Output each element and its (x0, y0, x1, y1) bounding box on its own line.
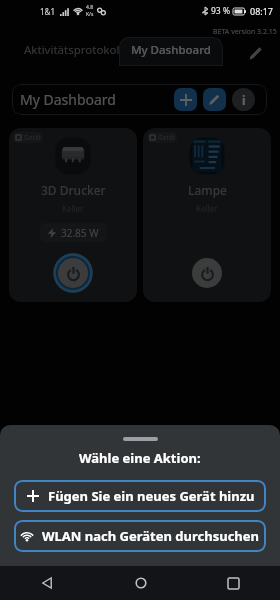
button[interactable]: Aktivitätsprotokoll (21, 35, 125, 64)
button[interactable]: Home (94, 566, 187, 600)
button[interactable]: Add (174, 88, 197, 111)
staticText: Wähle eine Aktion: (79, 449, 201, 467)
button[interactable]: Info (232, 88, 255, 111)
button[interactable]: Power toggle (53, 253, 93, 293)
button[interactable]: WLAN nach Geräten durchsuchen (14, 520, 266, 552)
staticText: Aktivitätsprotokoll (24, 42, 123, 58)
staticText: Lampe (188, 182, 227, 198)
staticText: Keller (196, 203, 218, 214)
button[interactable]: Recents (187, 566, 280, 600)
staticText: Gerät (24, 133, 41, 142)
staticText: i (242, 92, 246, 108)
staticText: WLAN nach Geräten durchsuchen (42, 527, 260, 545)
staticText: 3D Drucker (41, 182, 106, 198)
button[interactable]: Back (0, 566, 94, 600)
staticText: My Dashboard (131, 42, 211, 58)
staticText: 32.85 W (61, 226, 99, 240)
staticText: My Dashboard (20, 90, 116, 109)
button[interactable]: My Dashboard (119, 37, 223, 66)
staticText: 1&1 (40, 6, 56, 17)
staticText: 93 % (211, 5, 230, 17)
button[interactable]: Fügen Sie ein neues Gerät hinzu (14, 480, 266, 512)
staticText: K/s (86, 11, 94, 18)
button[interactable]: Power toggle (187, 253, 227, 293)
button[interactable]: Gerät (9, 128, 137, 302)
button[interactable]: Gerät (143, 128, 271, 302)
staticText: Gerät (158, 133, 175, 142)
staticText: 4.8 (86, 4, 94, 11)
staticText: Fügen Sie ein neues Gerät hinzu (48, 487, 255, 505)
button[interactable]: Edit dashboard (203, 88, 226, 111)
staticText: 08:17 (250, 5, 274, 17)
staticText: BETA version 3.2.15 (213, 27, 277, 37)
staticText: Keller (62, 203, 84, 214)
button[interactable]: Edit (242, 39, 270, 67)
